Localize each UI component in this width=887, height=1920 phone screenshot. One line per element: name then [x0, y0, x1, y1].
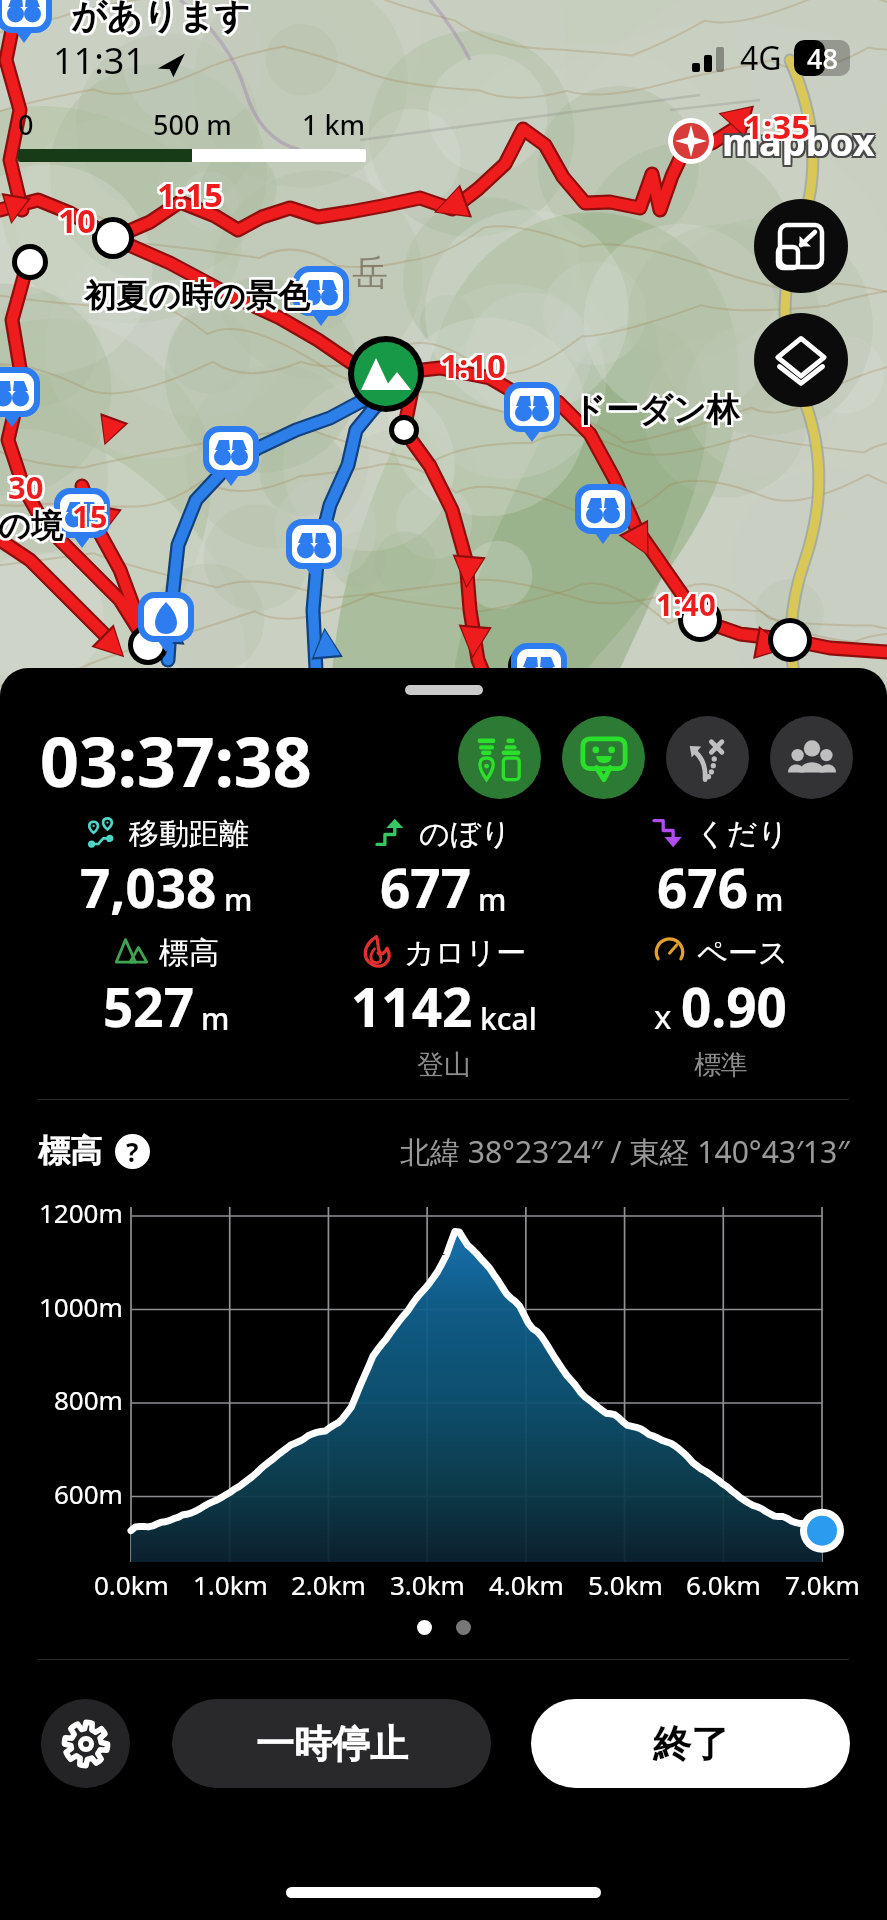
- staticText: 15: [70, 495, 106, 537]
- staticText: 6.0km: [686, 1567, 761, 1602]
- staticText: 初夏の時の景色: [82, 274, 308, 314]
- staticText: 15: [74, 495, 110, 537]
- staticText: があります: [69, 0, 249, 40]
- staticText: 5.0km: [588, 1567, 663, 1602]
- staticText: 2.0km: [291, 1567, 366, 1602]
- staticText: 0.90: [681, 970, 787, 1042]
- staticText: 1:40: [658, 582, 718, 623]
- staticText: 1000m: [39, 1289, 123, 1324]
- staticText: くだり: [696, 815, 789, 849]
- staticText: 1:40: [654, 584, 714, 625]
- staticText: 初夏の時の景色: [86, 276, 312, 316]
- button[interactable]: Off route: [666, 716, 749, 799]
- staticText: があります: [73, 0, 253, 38]
- staticText: 1200m: [39, 1195, 123, 1230]
- staticText: x: [654, 994, 681, 1039]
- staticText: 30: [10, 466, 46, 508]
- staticText: 1:10: [440, 341, 506, 386]
- staticText: 10: [58, 198, 96, 243]
- staticText: カロリー: [404, 934, 527, 968]
- staticText: 30: [8, 464, 44, 506]
- staticText: 1:15: [159, 170, 225, 215]
- staticText: 1:35: [746, 106, 812, 151]
- staticText: mapbox: [722, 117, 875, 169]
- staticText: 1:15: [155, 174, 221, 219]
- staticText: 1:35: [742, 106, 808, 151]
- staticText: 1:15: [157, 174, 223, 219]
- button[interactable]: Help: [115, 1134, 150, 1169]
- button[interactable]: Map layers: [754, 313, 848, 407]
- staticText: 1:10: [438, 341, 504, 386]
- staticText: があります: [73, 0, 253, 36]
- staticText: 標準: [694, 1048, 748, 1082]
- staticText: 10: [56, 200, 94, 245]
- staticText: 1:40: [658, 586, 718, 627]
- staticText: 移動距離: [129, 815, 249, 849]
- staticText: ドーダン林: [574, 389, 742, 431]
- staticText: ドーダン林: [570, 391, 738, 433]
- staticText: 1:10: [438, 345, 504, 390]
- button[interactable]: 終了: [531, 1699, 850, 1788]
- staticText: 15: [70, 497, 106, 539]
- staticText: 1:40: [656, 584, 716, 625]
- staticText: 初夏の時の景色: [82, 276, 308, 316]
- staticText: 1:15: [157, 172, 223, 217]
- staticText: 600m: [54, 1476, 123, 1511]
- button[interactable]: Settings: [41, 1699, 130, 1788]
- staticText: 初夏の時の景色: [84, 274, 310, 314]
- staticText: 3.0km: [390, 1567, 465, 1602]
- button[interactable]: Minimize map: [754, 199, 848, 293]
- staticText: mapbox: [720, 117, 873, 169]
- staticText: があります: [73, 0, 253, 40]
- staticText: 岳: [352, 250, 388, 295]
- staticText: の境: [0, 504, 61, 544]
- staticText: 1:10: [440, 345, 506, 390]
- staticText: の境: [0, 504, 65, 544]
- staticText: 15: [74, 493, 110, 535]
- staticText: 15: [74, 497, 110, 539]
- staticText: 11:31: [53, 36, 146, 85]
- staticText: 10: [56, 196, 94, 241]
- staticText: 4.0km: [489, 1567, 564, 1602]
- staticText: mapbox: [722, 113, 875, 165]
- staticText: 1:40: [654, 582, 714, 623]
- button[interactable]: 一時停止: [172, 1699, 491, 1788]
- staticText: ドーダン林: [572, 391, 740, 433]
- staticText: 1:15: [159, 174, 225, 219]
- staticText: 1 km: [302, 106, 366, 143]
- staticText: 10: [56, 198, 94, 243]
- button[interactable]: Members: [770, 716, 853, 799]
- staticText: 0: [18, 106, 34, 143]
- staticText: kcal: [480, 998, 537, 1039]
- staticText: があります: [69, 0, 249, 36]
- staticText: があります: [71, 0, 251, 40]
- staticText: 30: [8, 466, 44, 508]
- staticText: 初夏の時の景色: [84, 276, 310, 316]
- button[interactable]: Share location: [458, 716, 541, 799]
- staticText: 北緯 38°23′24″ / 東経 140°43′13″: [400, 1131, 850, 1172]
- staticText: 03:37:38: [40, 714, 312, 797]
- staticText: 7.0km: [785, 1567, 860, 1602]
- staticText: 登山: [417, 1048, 471, 1082]
- staticText: 30: [6, 464, 42, 506]
- button[interactable]: Post moment: [562, 716, 645, 799]
- staticText: の境: [0, 508, 65, 548]
- staticText: の境: [0, 508, 61, 548]
- staticText: 1:35: [744, 102, 810, 147]
- staticText: 初夏の時の景色: [86, 278, 312, 318]
- staticText: 1:10: [442, 345, 508, 390]
- staticText: 1:15: [155, 172, 221, 217]
- staticText: ドーダン林: [572, 387, 740, 429]
- staticText: 1:15: [157, 170, 223, 215]
- staticText: 1:15: [155, 170, 221, 215]
- staticText: 1:40: [656, 586, 716, 627]
- staticText: 7,038: [80, 851, 217, 923]
- staticText: 10: [60, 196, 98, 241]
- staticText: 1:10: [440, 343, 506, 388]
- staticText: mapbox: [720, 115, 873, 167]
- staticText: 1:35: [746, 104, 812, 149]
- staticText: ドーダン林: [574, 387, 742, 429]
- staticText: 677: [380, 851, 471, 923]
- staticText: 15: [72, 495, 108, 537]
- staticText: 15: [72, 493, 108, 535]
